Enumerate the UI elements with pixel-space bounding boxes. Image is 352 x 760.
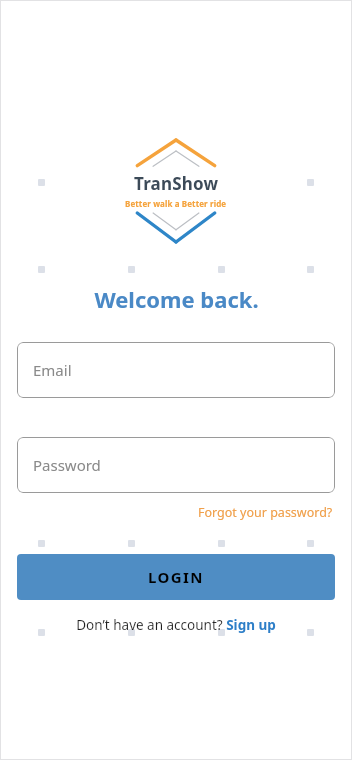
staticText: Password: [33, 455, 101, 475]
staticText: TranShow: [134, 172, 219, 195]
button[interactable]: Forgot your password?: [196, 503, 335, 522]
staticText: Better walk a Better ride: [125, 198, 227, 209]
button[interactable]: LOGIN: [17, 554, 335, 600]
button[interactable]: Email: [17, 342, 335, 398]
staticText: Forgot your password?: [198, 504, 333, 521]
staticText: Welcome back.: [94, 284, 259, 314]
button[interactable]: Password: [17, 437, 335, 493]
button[interactable]: Don’t have an account? Sign up: [74, 614, 278, 636]
staticText: LOGIN: [148, 567, 204, 587]
staticText: Email: [33, 360, 72, 380]
staticText: Don’t have an account? Sign up: [76, 616, 276, 634]
